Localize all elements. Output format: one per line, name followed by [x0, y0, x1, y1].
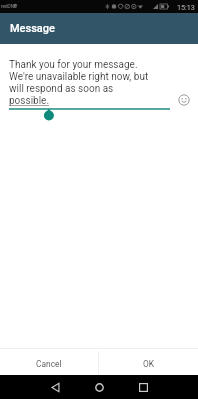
staticText: Message — [10, 22, 55, 35]
button[interactable]: OK — [99, 349, 198, 375]
button[interactable]: Back — [41, 375, 69, 399]
staticText: Thank you for your message. We're unavai… — [9, 59, 149, 107]
staticText: redONE — [1, 4, 17, 9]
button[interactable]: Insert emoji — [173, 89, 195, 111]
staticText: OK — [143, 359, 155, 369]
staticText: 15:13 — [177, 3, 195, 11]
button[interactable]: Recent apps — [129, 375, 157, 399]
staticText: Cancel — [36, 359, 62, 369]
button[interactable]: Cancel — [0, 349, 98, 375]
button[interactable]: Home — [85, 375, 113, 399]
